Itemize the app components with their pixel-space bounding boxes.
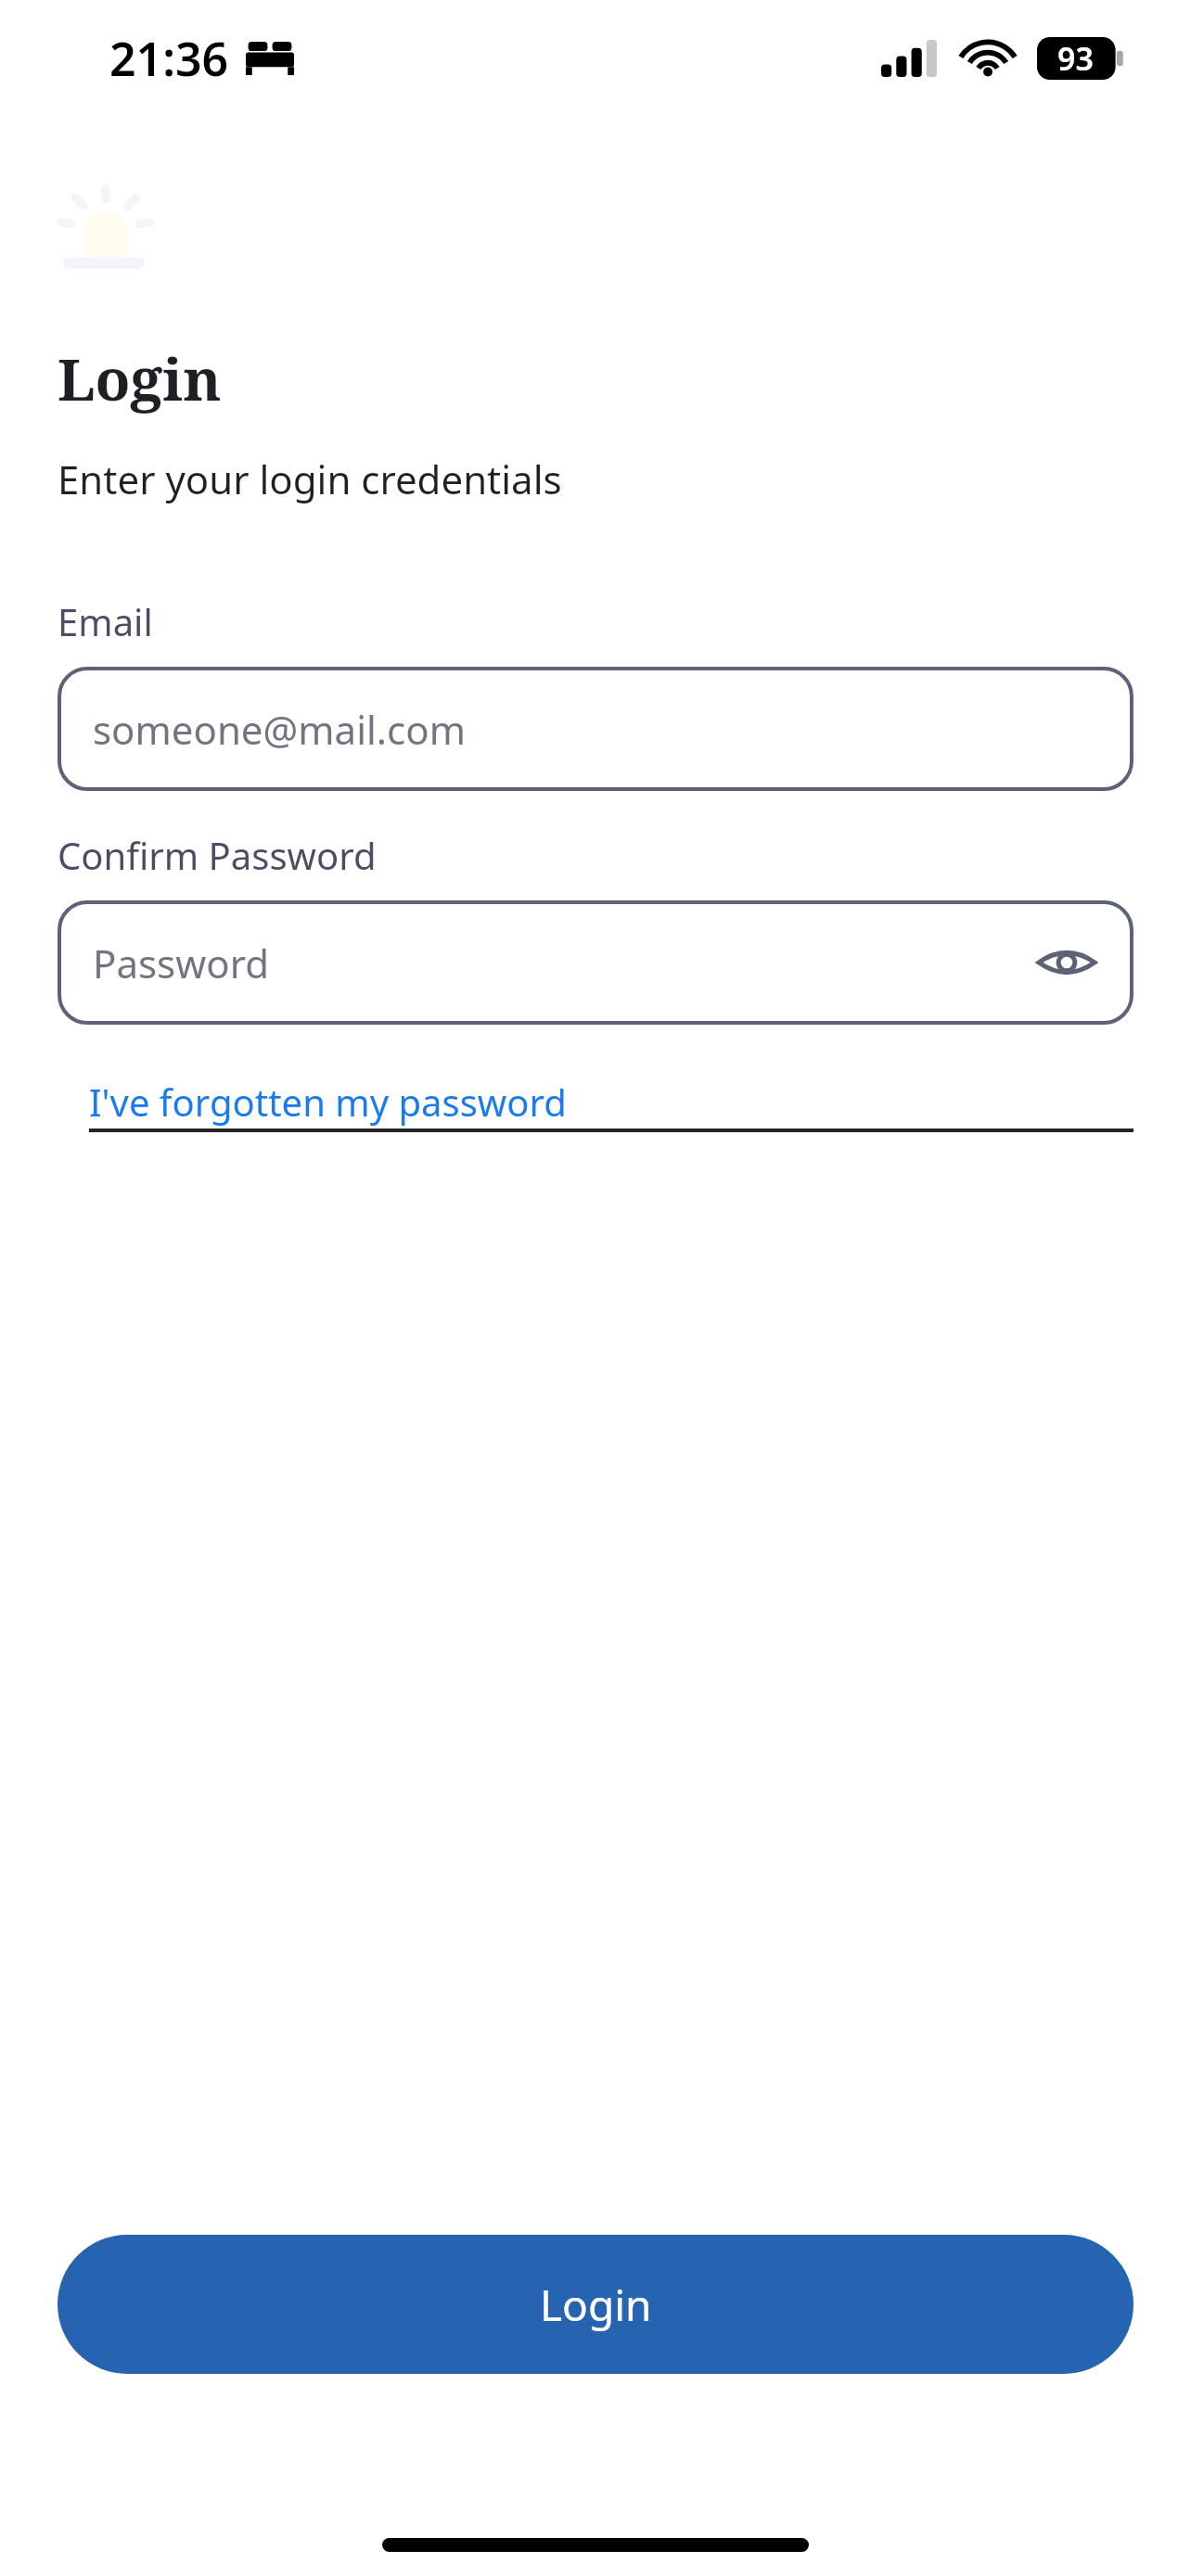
staticText: Confirm Password — [58, 830, 377, 880]
staticText: 21:36 — [109, 27, 229, 90]
button[interactable]: someone@mail.com — [58, 667, 1133, 791]
button[interactable]: Password — [58, 900, 1133, 1025]
button[interactable]: I've forgotten my password — [89, 1077, 1133, 1127]
button[interactable]: Login — [58, 2235, 1133, 2374]
staticText: Password — [93, 937, 269, 989]
staticText: Login — [540, 2276, 652, 2334]
staticText: Login — [58, 339, 222, 417]
staticText: someone@mail.com — [93, 703, 466, 756]
staticText: I've forgotten my password — [89, 1077, 567, 1127]
staticText: 93 — [1057, 37, 1094, 80]
staticText: Email — [58, 596, 153, 646]
button[interactable]: Show password — [1031, 927, 1102, 998]
staticText: Enter your login credentials — [58, 453, 562, 505]
